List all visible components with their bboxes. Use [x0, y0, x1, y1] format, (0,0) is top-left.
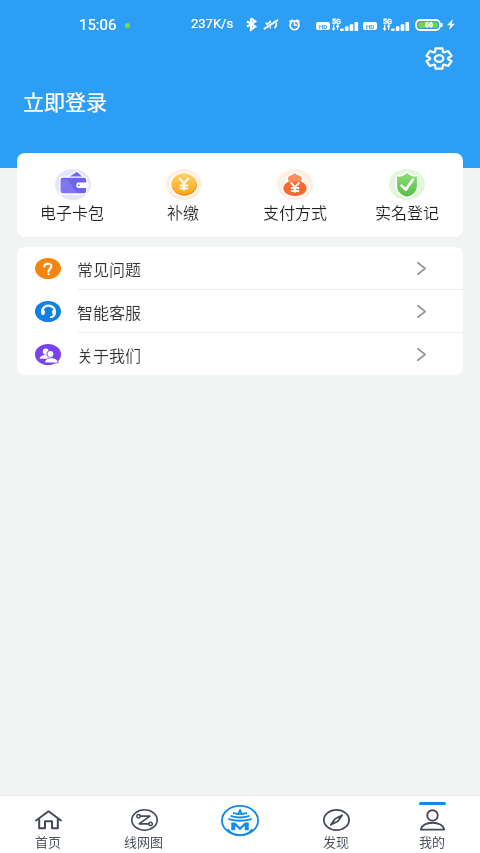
- button[interactable]: 补缴: [128, 153, 239, 237]
- button[interactable]: 发现: [288, 796, 384, 853]
- staticText: 首页: [35, 832, 62, 851]
- staticText: 智能客服: [77, 300, 142, 323]
- button[interactable]: Settings: [422, 43, 455, 74]
- staticText: 补缴: [167, 200, 200, 223]
- button[interactable]: 关于我们: [17, 333, 463, 375]
- button[interactable]: Metro home: [192, 796, 288, 853]
- button[interactable]: 电子卡包: [17, 153, 128, 237]
- staticText: HD: [319, 23, 328, 30]
- staticText: 线网图: [124, 832, 164, 851]
- button[interactable]: 支付方式: [239, 153, 351, 237]
- staticText: 我的: [419, 832, 446, 851]
- staticText: 15:06: [79, 16, 117, 34]
- button[interactable]: 实名登记: [351, 153, 463, 237]
- staticText: 电子卡包: [40, 200, 105, 223]
- staticText: 常见问题: [77, 257, 142, 280]
- staticText: 支付方式: [263, 200, 328, 223]
- staticText: 实名登记: [375, 200, 440, 223]
- button[interactable]: 智能客服: [17, 290, 463, 333]
- staticText: 66: [425, 21, 433, 29]
- staticText: 5G: [332, 18, 341, 26]
- staticText: 立即登录: [23, 86, 107, 116]
- staticText: 发现: [323, 832, 350, 851]
- button[interactable]: 我的: [384, 796, 480, 853]
- staticText: 5G: [383, 18, 392, 26]
- staticText: 关于我们: [77, 343, 142, 366]
- button[interactable]: 首页: [0, 796, 96, 853]
- button[interactable]: 常见问题: [17, 247, 463, 290]
- staticText: HD: [366, 23, 375, 30]
- button[interactable]: 线网图: [96, 796, 192, 853]
- staticText: 237K/s: [191, 16, 234, 31]
